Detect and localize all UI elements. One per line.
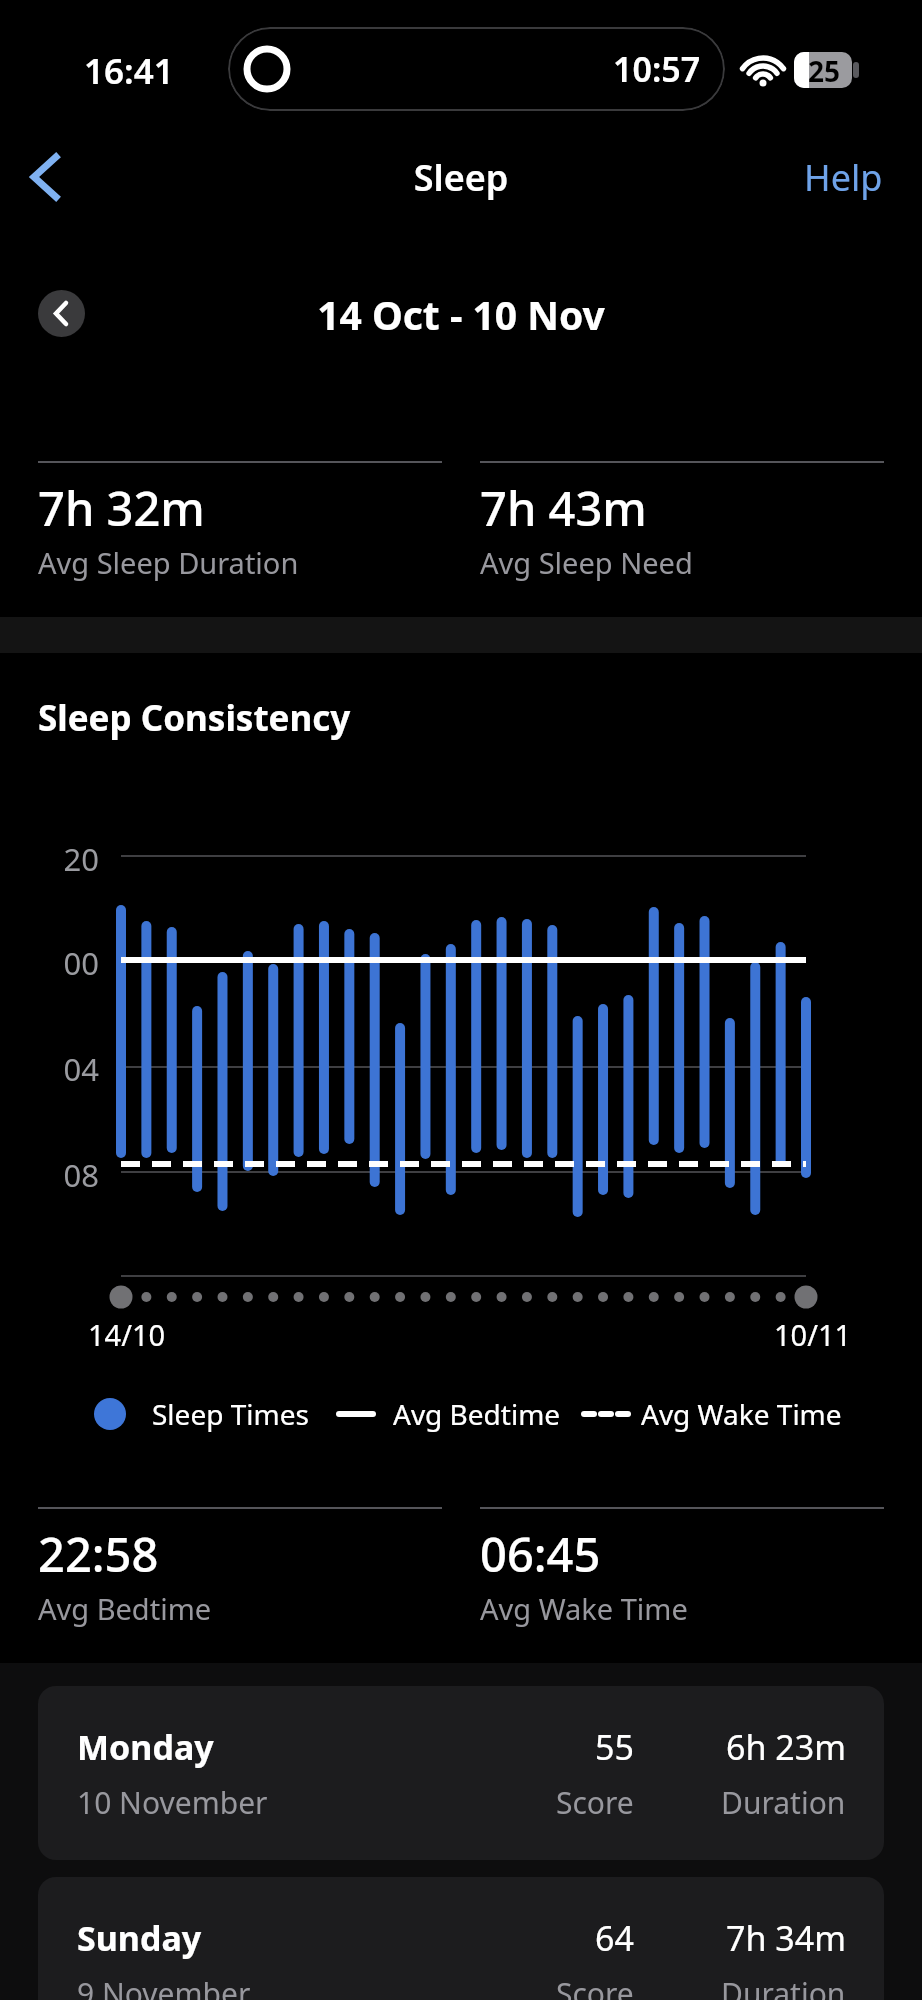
staticText: 10 November — [77, 1782, 268, 1823]
staticText: 16:41 — [84, 47, 174, 95]
staticText: Sleep Times — [152, 1395, 309, 1433]
staticText: Score — [556, 1973, 634, 2000]
staticText: 00 — [55, 942, 99, 984]
staticText: Avg Bedtime — [38, 1589, 212, 1628]
staticText: Avg Bedtime — [393, 1395, 561, 1433]
staticText: Help — [804, 153, 883, 202]
button[interactable] — [18, 145, 78, 209]
staticText: Duration — [721, 1782, 846, 1823]
staticText: 9 November — [77, 1973, 251, 2000]
staticText: 6h 23m — [726, 1724, 846, 1770]
staticText: Score — [556, 1782, 634, 1823]
staticText: 10/11 — [774, 1315, 852, 1354]
staticText: 04 — [55, 1048, 99, 1090]
staticText: 20 — [55, 838, 99, 880]
staticText: 64 — [595, 1915, 634, 1961]
staticText: 25 — [808, 52, 841, 88]
staticText: Avg Wake Time — [641, 1395, 842, 1433]
button[interactable] — [38, 290, 85, 337]
staticText: 08 — [55, 1154, 99, 1196]
staticText: Monday — [77, 1724, 214, 1770]
staticText: 7h 32m — [38, 476, 205, 540]
staticText: Duration — [721, 1973, 846, 2000]
staticText: 7h 34m — [726, 1915, 846, 1961]
staticText: 7h 43m — [480, 476, 647, 540]
button[interactable]: Sunday — [38, 1877, 884, 2000]
staticText: 55 — [595, 1724, 634, 1770]
staticText: 06:45 — [480, 1522, 601, 1586]
button[interactable]: Monday — [38, 1686, 884, 1860]
staticText: 10:57 — [613, 46, 701, 92]
staticText: Avg Sleep Need — [480, 543, 693, 582]
staticText: Avg Wake Time — [480, 1589, 688, 1628]
staticText: 14 Oct - 10 Nov — [0, 288, 922, 341]
staticText: Sleep — [0, 153, 922, 202]
staticText: 22:58 — [38, 1522, 159, 1586]
staticText: 14/10 — [88, 1315, 166, 1354]
staticText: Sleep Consistency — [38, 694, 351, 742]
staticText: Avg Sleep Duration — [38, 543, 299, 582]
button[interactable]: 10:57 — [228, 27, 725, 111]
staticText: Sunday — [77, 1915, 202, 1961]
button[interactable]: Help — [790, 148, 900, 206]
